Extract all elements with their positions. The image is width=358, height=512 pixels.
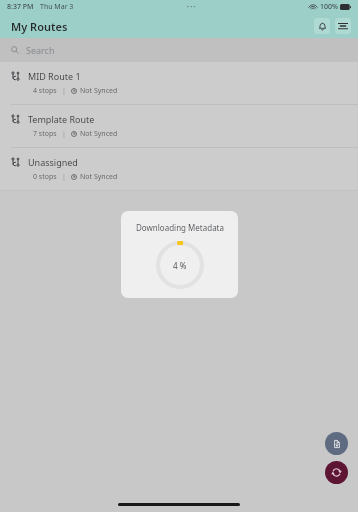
button[interactable]: Menu xyxy=(335,18,351,34)
staticText: 100% xyxy=(320,2,338,12)
staticText: Not Synced xyxy=(80,86,118,96)
staticText: Unassigned xyxy=(28,156,78,168)
staticText: 4 stops xyxy=(33,86,57,96)
staticText: • • • xyxy=(187,4,196,11)
staticText: 0 stops xyxy=(33,172,57,182)
button[interactable]: Search xyxy=(0,38,358,62)
button[interactable]: Template Route xyxy=(0,105,358,147)
staticText: Not Synced xyxy=(80,172,118,182)
staticText: Thu Mar 3 xyxy=(40,2,74,12)
staticText: 7 stops xyxy=(33,129,57,139)
button[interactable]: MID Route 1 xyxy=(0,62,358,104)
button[interactable]: Documents xyxy=(325,432,348,455)
staticText: 8:37 PM xyxy=(7,2,34,12)
staticText: | xyxy=(62,129,66,139)
staticText: Template Route xyxy=(28,113,95,125)
staticText: MID Route 1 xyxy=(28,70,81,82)
staticText: My Routes xyxy=(11,19,68,34)
staticText: Not Synced xyxy=(80,129,118,139)
button[interactable]: Notifications xyxy=(314,18,330,34)
staticText: | xyxy=(62,86,66,96)
button[interactable]: Unassigned xyxy=(0,148,358,190)
staticText: Search xyxy=(26,44,55,56)
button[interactable]: Sync xyxy=(325,461,348,484)
staticText: 4 % xyxy=(173,260,187,271)
staticText: Downloading Metadata xyxy=(136,222,224,233)
staticText: | xyxy=(62,172,66,182)
